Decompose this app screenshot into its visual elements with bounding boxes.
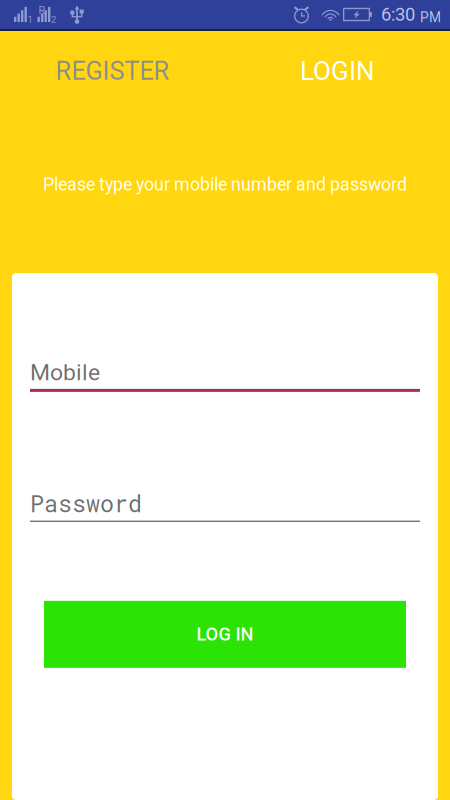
staticText: 6:30 xyxy=(381,4,415,25)
button[interactable]: Mobile xyxy=(30,359,420,392)
staticText: Password xyxy=(30,488,142,519)
staticText: Mobile xyxy=(30,359,100,386)
staticText: LOGIN xyxy=(300,56,375,86)
staticText: 2 xyxy=(51,14,56,25)
staticText: REGISTER xyxy=(55,56,169,86)
button[interactable]: LOG IN xyxy=(44,601,406,668)
staticText: Please type your mobile number and passw… xyxy=(43,174,407,195)
staticText: PM xyxy=(420,9,441,26)
staticText: 1 xyxy=(27,14,32,25)
staticText: LOG IN xyxy=(196,624,253,645)
button[interactable]: REGISTER xyxy=(0,47,225,95)
button[interactable]: LOGIN xyxy=(225,47,450,95)
staticText: R xyxy=(38,4,45,16)
button[interactable]: Password xyxy=(30,488,420,522)
